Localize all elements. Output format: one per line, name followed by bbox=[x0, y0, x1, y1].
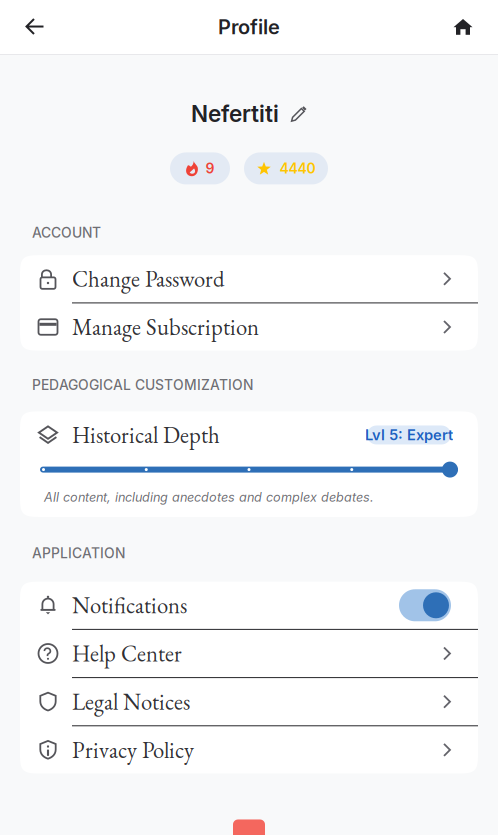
staticText: Legal Notices bbox=[72, 687, 190, 716]
staticText: Manage Subscription bbox=[72, 312, 259, 342]
staticText: ACCOUNT bbox=[32, 224, 101, 241]
button[interactable]: Manage Subscription bbox=[20, 303, 478, 351]
staticText: Change Password bbox=[72, 264, 224, 294]
staticText: Nefertiti bbox=[191, 100, 279, 127]
button[interactable]: Notifications bbox=[20, 582, 478, 630]
staticText: Privacy Policy bbox=[72, 735, 194, 765]
button[interactable]: Edit name bbox=[290, 106, 307, 122]
staticText: 4440 bbox=[279, 160, 315, 177]
staticText: PEDAGOGICAL CUSTOMIZATION bbox=[32, 377, 253, 393]
button[interactable]: Privacy Policy bbox=[20, 726, 478, 773]
staticText: All content, including anecdotes and com… bbox=[44, 490, 374, 505]
button[interactable]: Notifications bbox=[399, 589, 451, 621]
staticText: 9 bbox=[205, 160, 214, 177]
staticText: Lvl 5: Expert bbox=[365, 426, 453, 444]
button[interactable]: Home bbox=[440, 4, 486, 50]
staticText: Historical Depth bbox=[72, 420, 220, 450]
staticText: Help Center bbox=[72, 639, 182, 668]
staticText: Profile bbox=[218, 15, 280, 39]
staticText: Notifications bbox=[72, 590, 187, 620]
button[interactable]: Legal Notices bbox=[20, 678, 478, 726]
staticText: APPLICATION bbox=[32, 545, 125, 562]
button[interactable]: Back bbox=[12, 4, 58, 50]
button[interactable]: Change Password bbox=[20, 255, 478, 303]
button[interactable]: Help Center bbox=[20, 630, 478, 678]
